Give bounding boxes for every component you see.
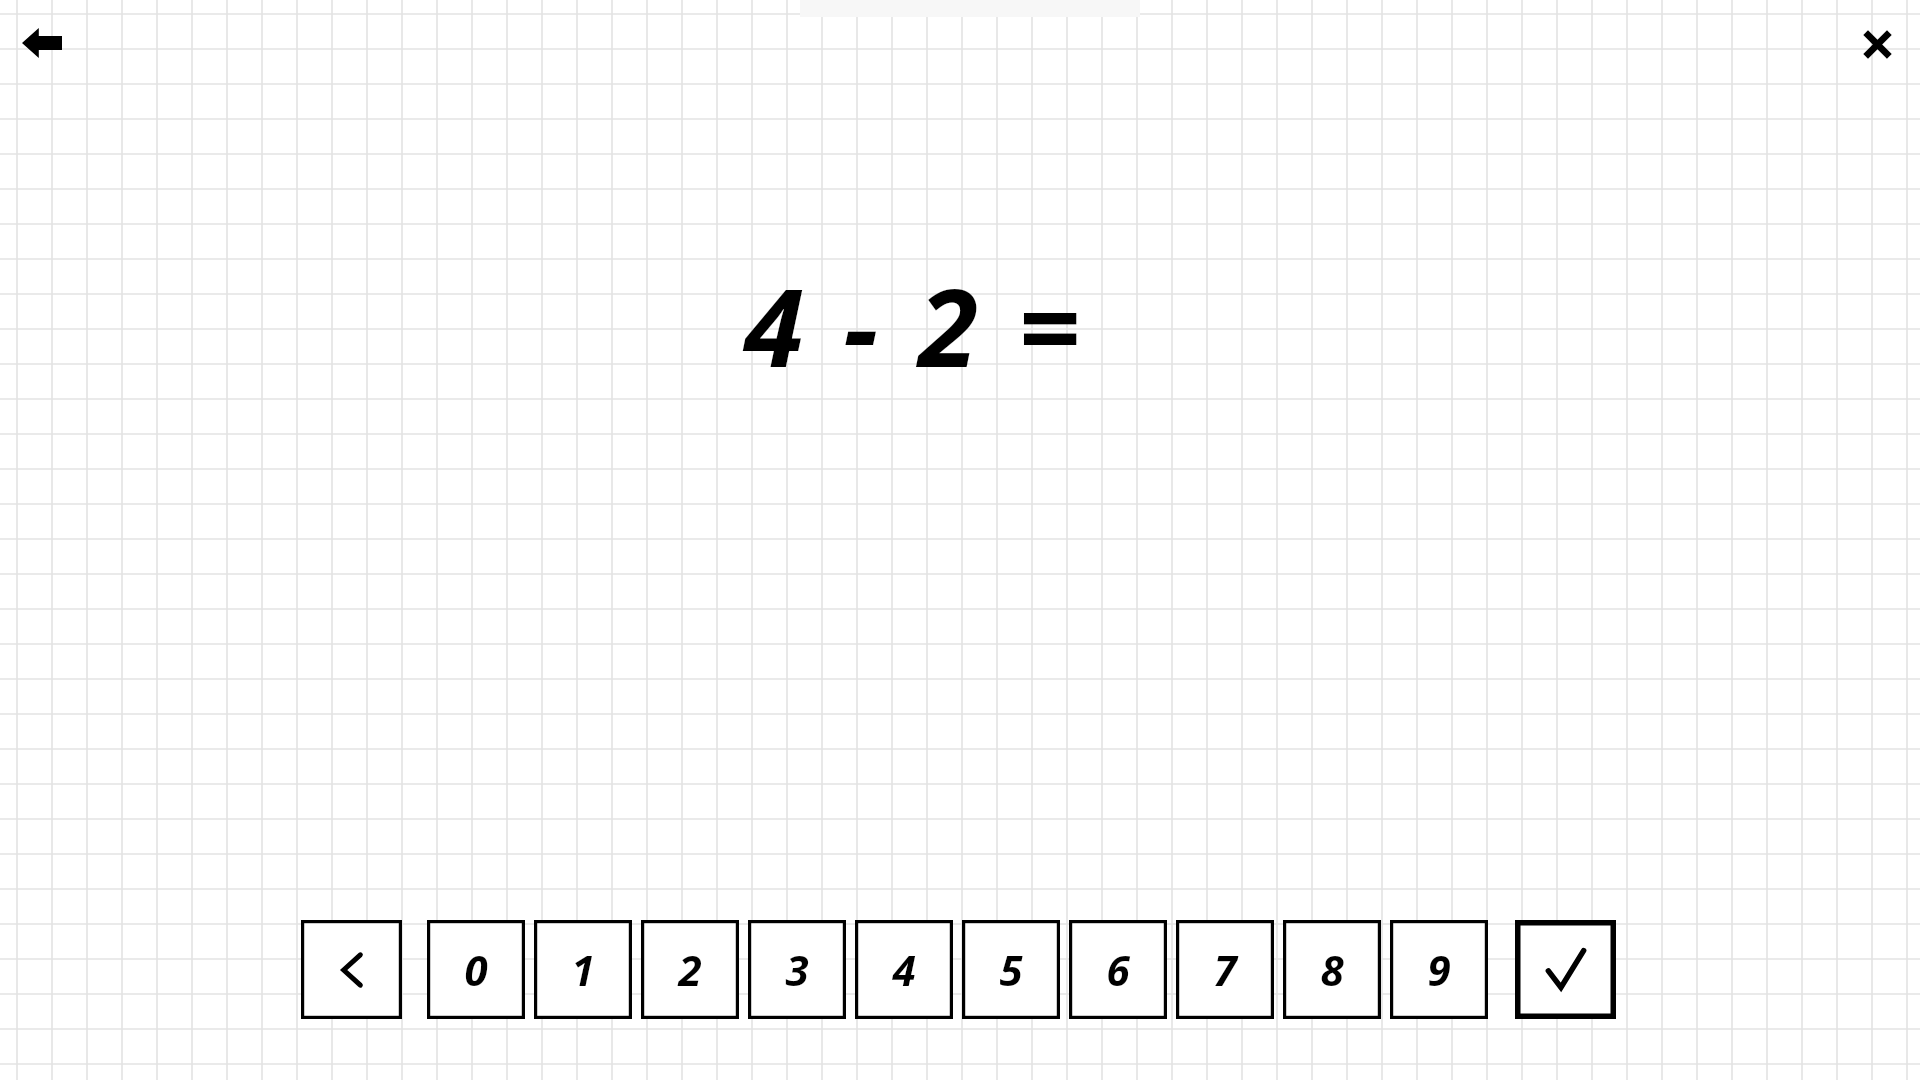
staticText: 8 xyxy=(1320,941,1344,998)
button[interactable]: 1 xyxy=(534,920,632,1019)
button[interactable]: Submit answer xyxy=(1515,920,1616,1019)
button[interactable]: 0 xyxy=(427,920,525,1019)
staticText: 7 xyxy=(1213,941,1237,998)
button[interactable]: Close xyxy=(1839,8,1915,80)
button[interactable]: Back xyxy=(4,11,80,75)
staticText: 0 xyxy=(464,941,488,998)
staticText: 3 xyxy=(785,941,809,998)
button[interactable]: 4 xyxy=(855,920,953,1019)
staticText: 1 xyxy=(571,941,595,998)
button[interactable]: 6 xyxy=(1069,920,1167,1019)
staticText: 5 xyxy=(999,941,1023,998)
button[interactable]: 5 xyxy=(962,920,1060,1019)
button[interactable]: Backspace xyxy=(301,920,402,1019)
staticText: 4 xyxy=(892,941,916,998)
button[interactable]: 7 xyxy=(1176,920,1274,1019)
staticText: 6 xyxy=(1106,941,1130,998)
staticText: 9 xyxy=(1427,941,1451,998)
button[interactable]: 8 xyxy=(1283,920,1381,1019)
button[interactable]: 3 xyxy=(748,920,846,1019)
staticText: 4 - 2 = xyxy=(744,252,1086,399)
button[interactable]: 2 xyxy=(641,920,739,1019)
staticText: 2 xyxy=(678,941,702,998)
button[interactable]: 9 xyxy=(1390,920,1488,1019)
